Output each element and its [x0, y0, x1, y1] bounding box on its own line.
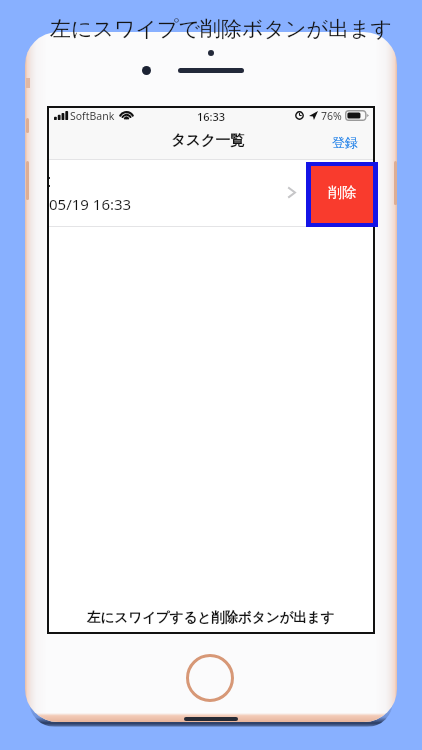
button[interactable]: 登録	[332, 134, 358, 150]
button[interactable]: Delete button highlight	[306, 162, 378, 227]
other: Home	[186, 654, 234, 702]
staticText: 左にスワイプすると削除ボタンが出ます	[87, 609, 335, 626]
staticText: 16:33	[197, 109, 226, 124]
staticText: 削除	[328, 184, 356, 202]
staticText: 76%	[321, 109, 342, 123]
staticText: SoftBank	[70, 109, 115, 123]
staticText: タスク一覧	[171, 131, 245, 149]
staticText: 左にスワイプで削除ボタンが出ます	[50, 16, 392, 42]
staticText: 05/19 16:33	[49, 194, 132, 214]
button[interactable]: 05/19 16:33	[47, 160, 375, 227]
staticText: 登録	[332, 134, 358, 150]
